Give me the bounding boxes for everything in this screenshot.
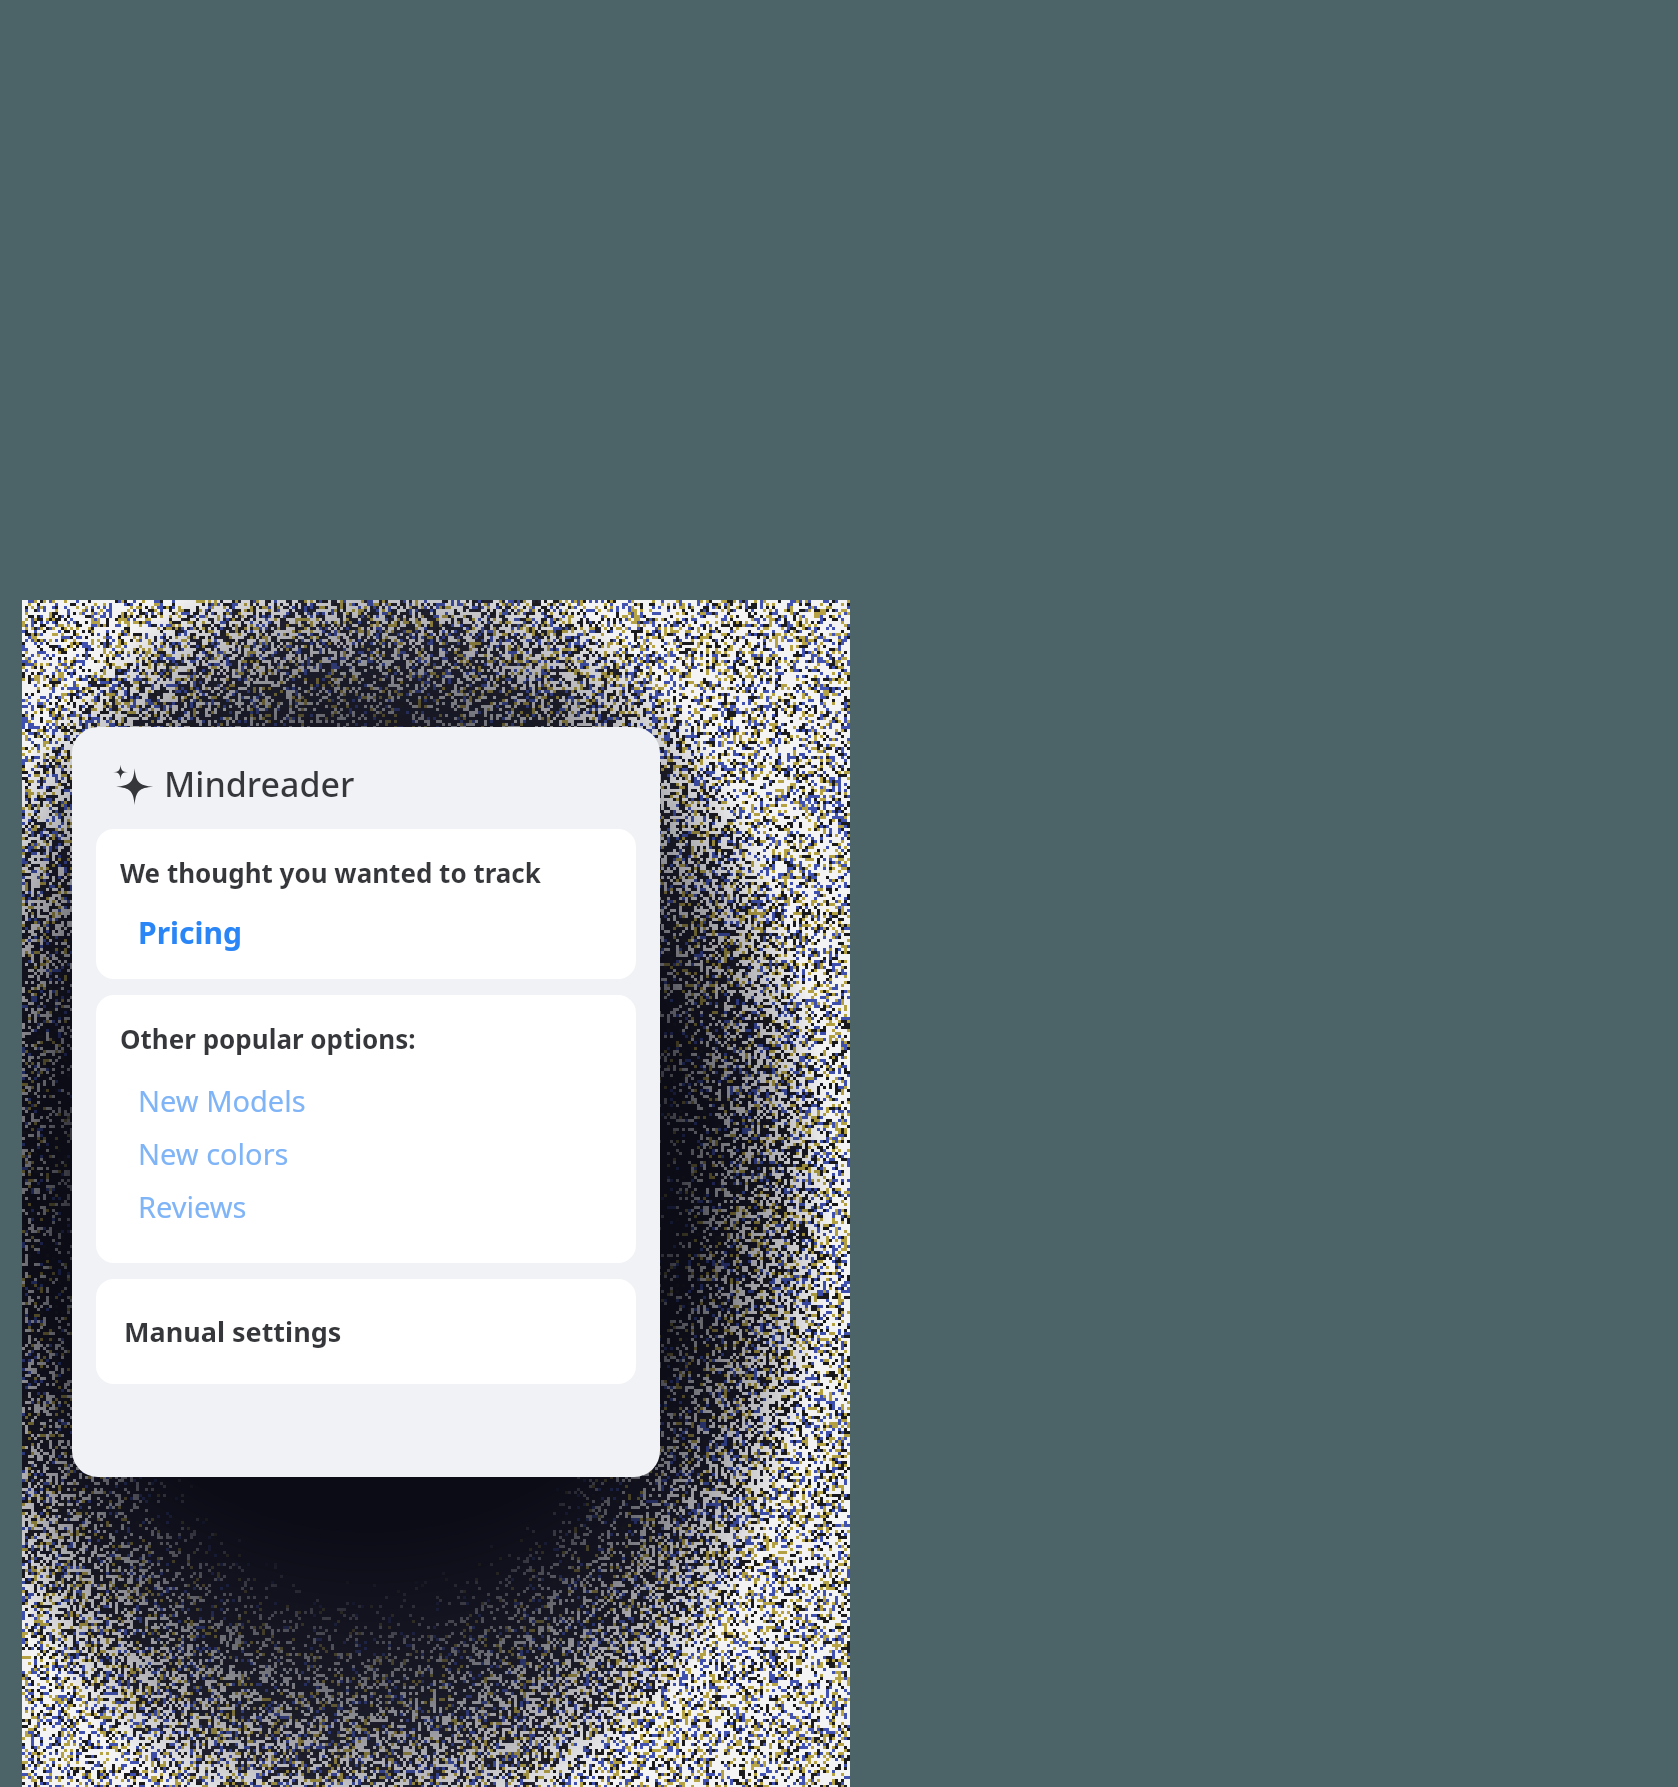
- button[interactable]: Pricing: [138, 912, 242, 953]
- staticText: Manual settings: [124, 1313, 342, 1350]
- button[interactable]: Manual settings: [96, 1279, 636, 1384]
- staticText: Mindreader: [164, 761, 355, 807]
- staticText: Other popular options:: [120, 1021, 416, 1056]
- staticText: Reviews: [138, 1187, 247, 1226]
- button[interactable]: New colors: [138, 1127, 289, 1180]
- button[interactable]: New Models: [138, 1074, 306, 1127]
- staticText: New colors: [138, 1134, 289, 1173]
- button[interactable]: Reviews: [138, 1180, 247, 1233]
- staticText: New Models: [138, 1081, 306, 1120]
- button[interactable]: Mindreader: [110, 761, 355, 807]
- staticText: We thought you wanted to track: [120, 855, 541, 890]
- staticText: Pricing: [138, 912, 242, 953]
